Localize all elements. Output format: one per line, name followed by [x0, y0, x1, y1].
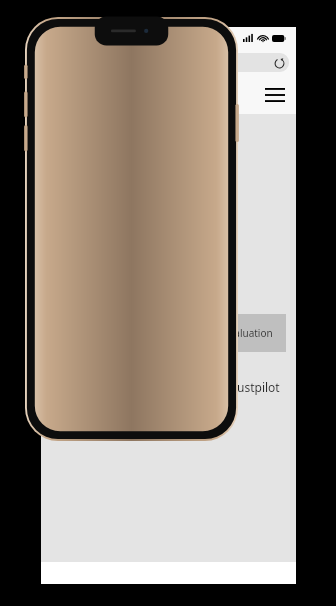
staticText: Free Valuation — [55, 128, 196, 155]
staticText: abcproperty.com — [143, 58, 203, 68]
staticText: Excellent — [55, 378, 110, 396]
button[interactable]: Get Free Valuation — [172, 314, 286, 352]
button[interactable]: AA — [48, 53, 289, 72]
staticText: Unique selling point 3 — [79, 270, 192, 285]
staticText: Logo — [66, 87, 95, 103]
staticText: Message — [55, 160, 141, 187]
staticText: eg. SW1A — [61, 327, 101, 339]
staticText: Local agent for area — [79, 243, 183, 258]
button[interactable]: Sell Your Home — [147, 84, 227, 106]
button[interactable]: Reload — [271, 55, 287, 71]
button[interactable]: Menu — [262, 82, 288, 108]
staticText: Get Free Valuation — [186, 326, 273, 340]
button[interactable]: Logo — [41, 76, 119, 114]
staticText: USP 1 e.g. 3 fee options to choose from — [79, 201, 215, 231]
button[interactable]: eg. SW1A — [55, 320, 172, 346]
staticText: Sell Your Home — [158, 90, 216, 101]
button[interactable]: Excellent — [55, 378, 286, 396]
staticText: 9:41 — [56, 32, 75, 45]
staticText: Trustpilot — [226, 379, 280, 395]
staticText: Enter your postcode — [55, 297, 146, 310]
